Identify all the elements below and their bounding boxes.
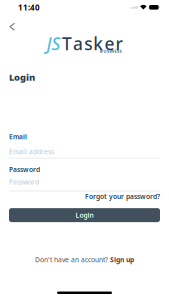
staticText: Password <box>9 177 39 186</box>
staticText: e <box>104 32 114 55</box>
staticText: U <box>103 49 106 54</box>
staticText: a <box>73 32 83 55</box>
staticText: 11:40 <box>18 2 40 13</box>
button[interactable]: Login <box>9 208 160 222</box>
staticText: Login <box>9 71 35 83</box>
staticText: k <box>93 32 103 55</box>
staticText: Email address <box>9 147 54 156</box>
staticText: s <box>84 32 92 55</box>
staticText: S <box>107 49 109 54</box>
staticText: Email <box>9 132 27 141</box>
staticText: Password <box>9 165 40 174</box>
staticText: T <box>62 32 72 55</box>
button[interactable]: Sign up <box>110 255 134 264</box>
staticText: Forgot your password? <box>85 192 160 201</box>
staticText: E <box>114 49 116 54</box>
staticText: Login <box>75 211 93 220</box>
staticText: r <box>115 32 122 55</box>
staticText: N <box>111 49 114 54</box>
staticText: S <box>117 49 119 54</box>
staticText: B <box>100 49 103 54</box>
staticText: Don't have an account? <box>35 255 108 264</box>
staticText: JS <box>46 32 60 55</box>
staticText: Sign up <box>110 255 134 264</box>
button[interactable]: Back <box>0 23 18 30</box>
button[interactable]: Forgot your password? <box>85 192 160 201</box>
staticText: S <box>119 49 121 54</box>
